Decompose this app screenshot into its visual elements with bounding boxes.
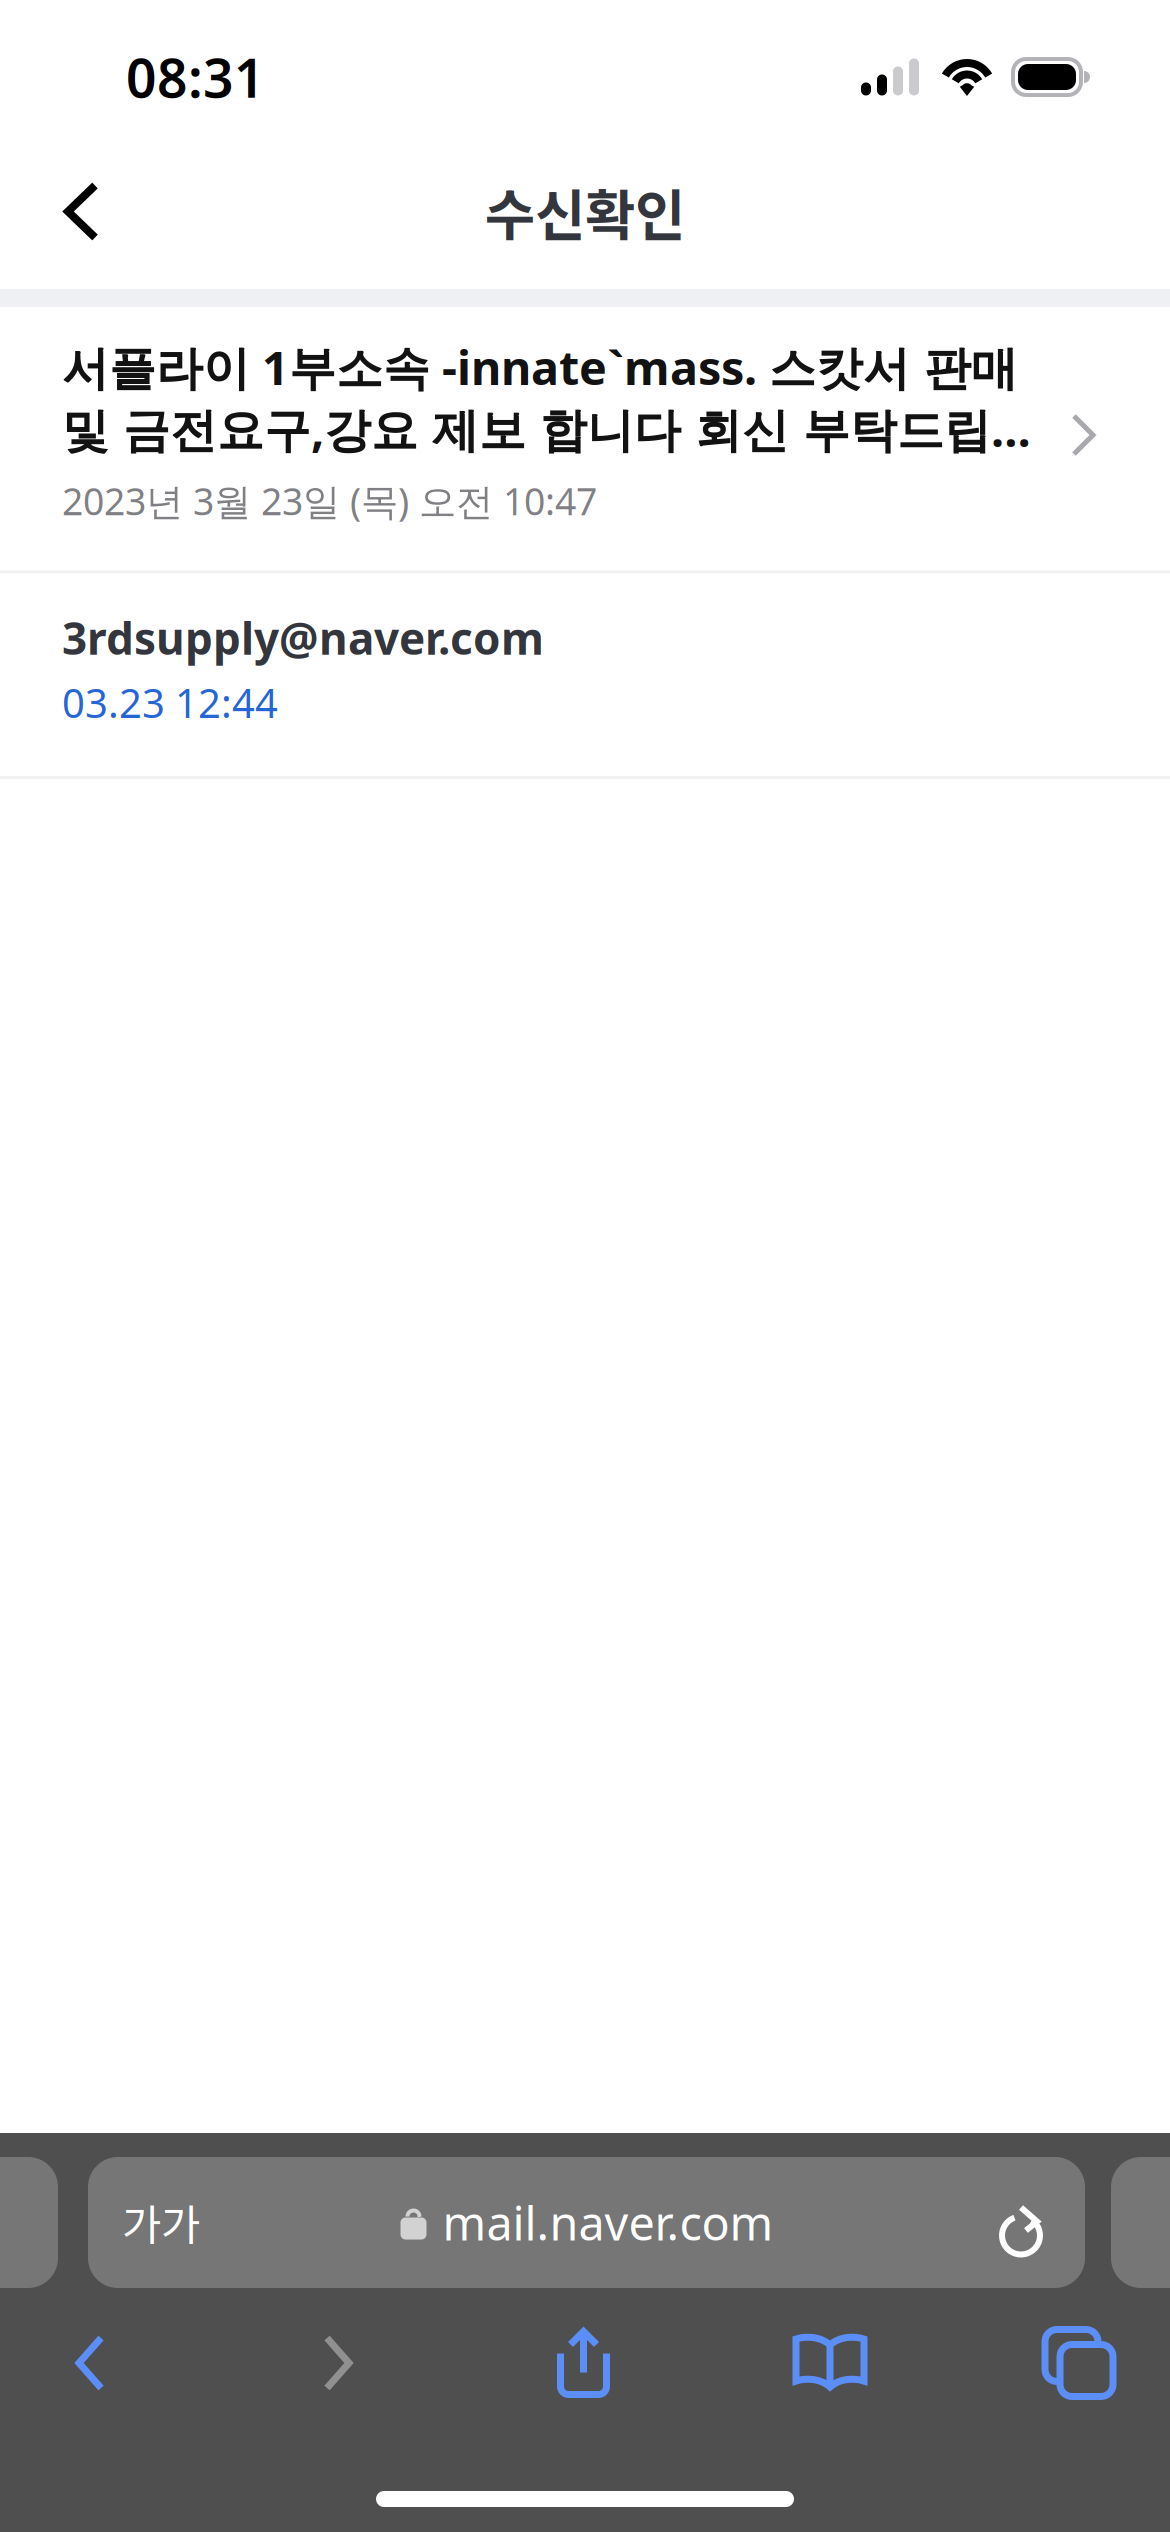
- button[interactable]: Share: [513, 2307, 655, 2419]
- staticText: mail.naver.com: [442, 2191, 773, 2253]
- staticText: 및 금전요구,강요 제보 합니다 회신 부탁드립…: [62, 398, 1031, 460]
- button[interactable]: mail.naver.com: [0, 2133, 997, 2264]
- staticText: 03.23 12:44: [62, 676, 278, 729]
- button[interactable]: Back: [0, 141, 145, 281]
- staticText: 2023년 3월 23일 (목) 오전 10:47: [62, 476, 597, 525]
- staticText: 3rdsupply@naver.com: [62, 608, 544, 667]
- button[interactable]: 서플라이 1부소속 -innate`mass. 스캇서 판매: [0, 307, 1170, 570]
- button[interactable]: Forward: [267, 2307, 409, 2419]
- staticText: 가가: [122, 2192, 200, 2253]
- staticText: 수신확인: [485, 172, 685, 251]
- staticText: 08:31: [126, 42, 265, 112]
- staticText: 서플라이 1부소속 -innate`mass. 스캇서 판매: [62, 336, 1018, 398]
- button[interactable]: Tabs: [1008, 2307, 1150, 2419]
- button[interactable]: Bookmarks: [759, 2307, 901, 2419]
- button[interactable]: Back: [19, 2307, 161, 2419]
